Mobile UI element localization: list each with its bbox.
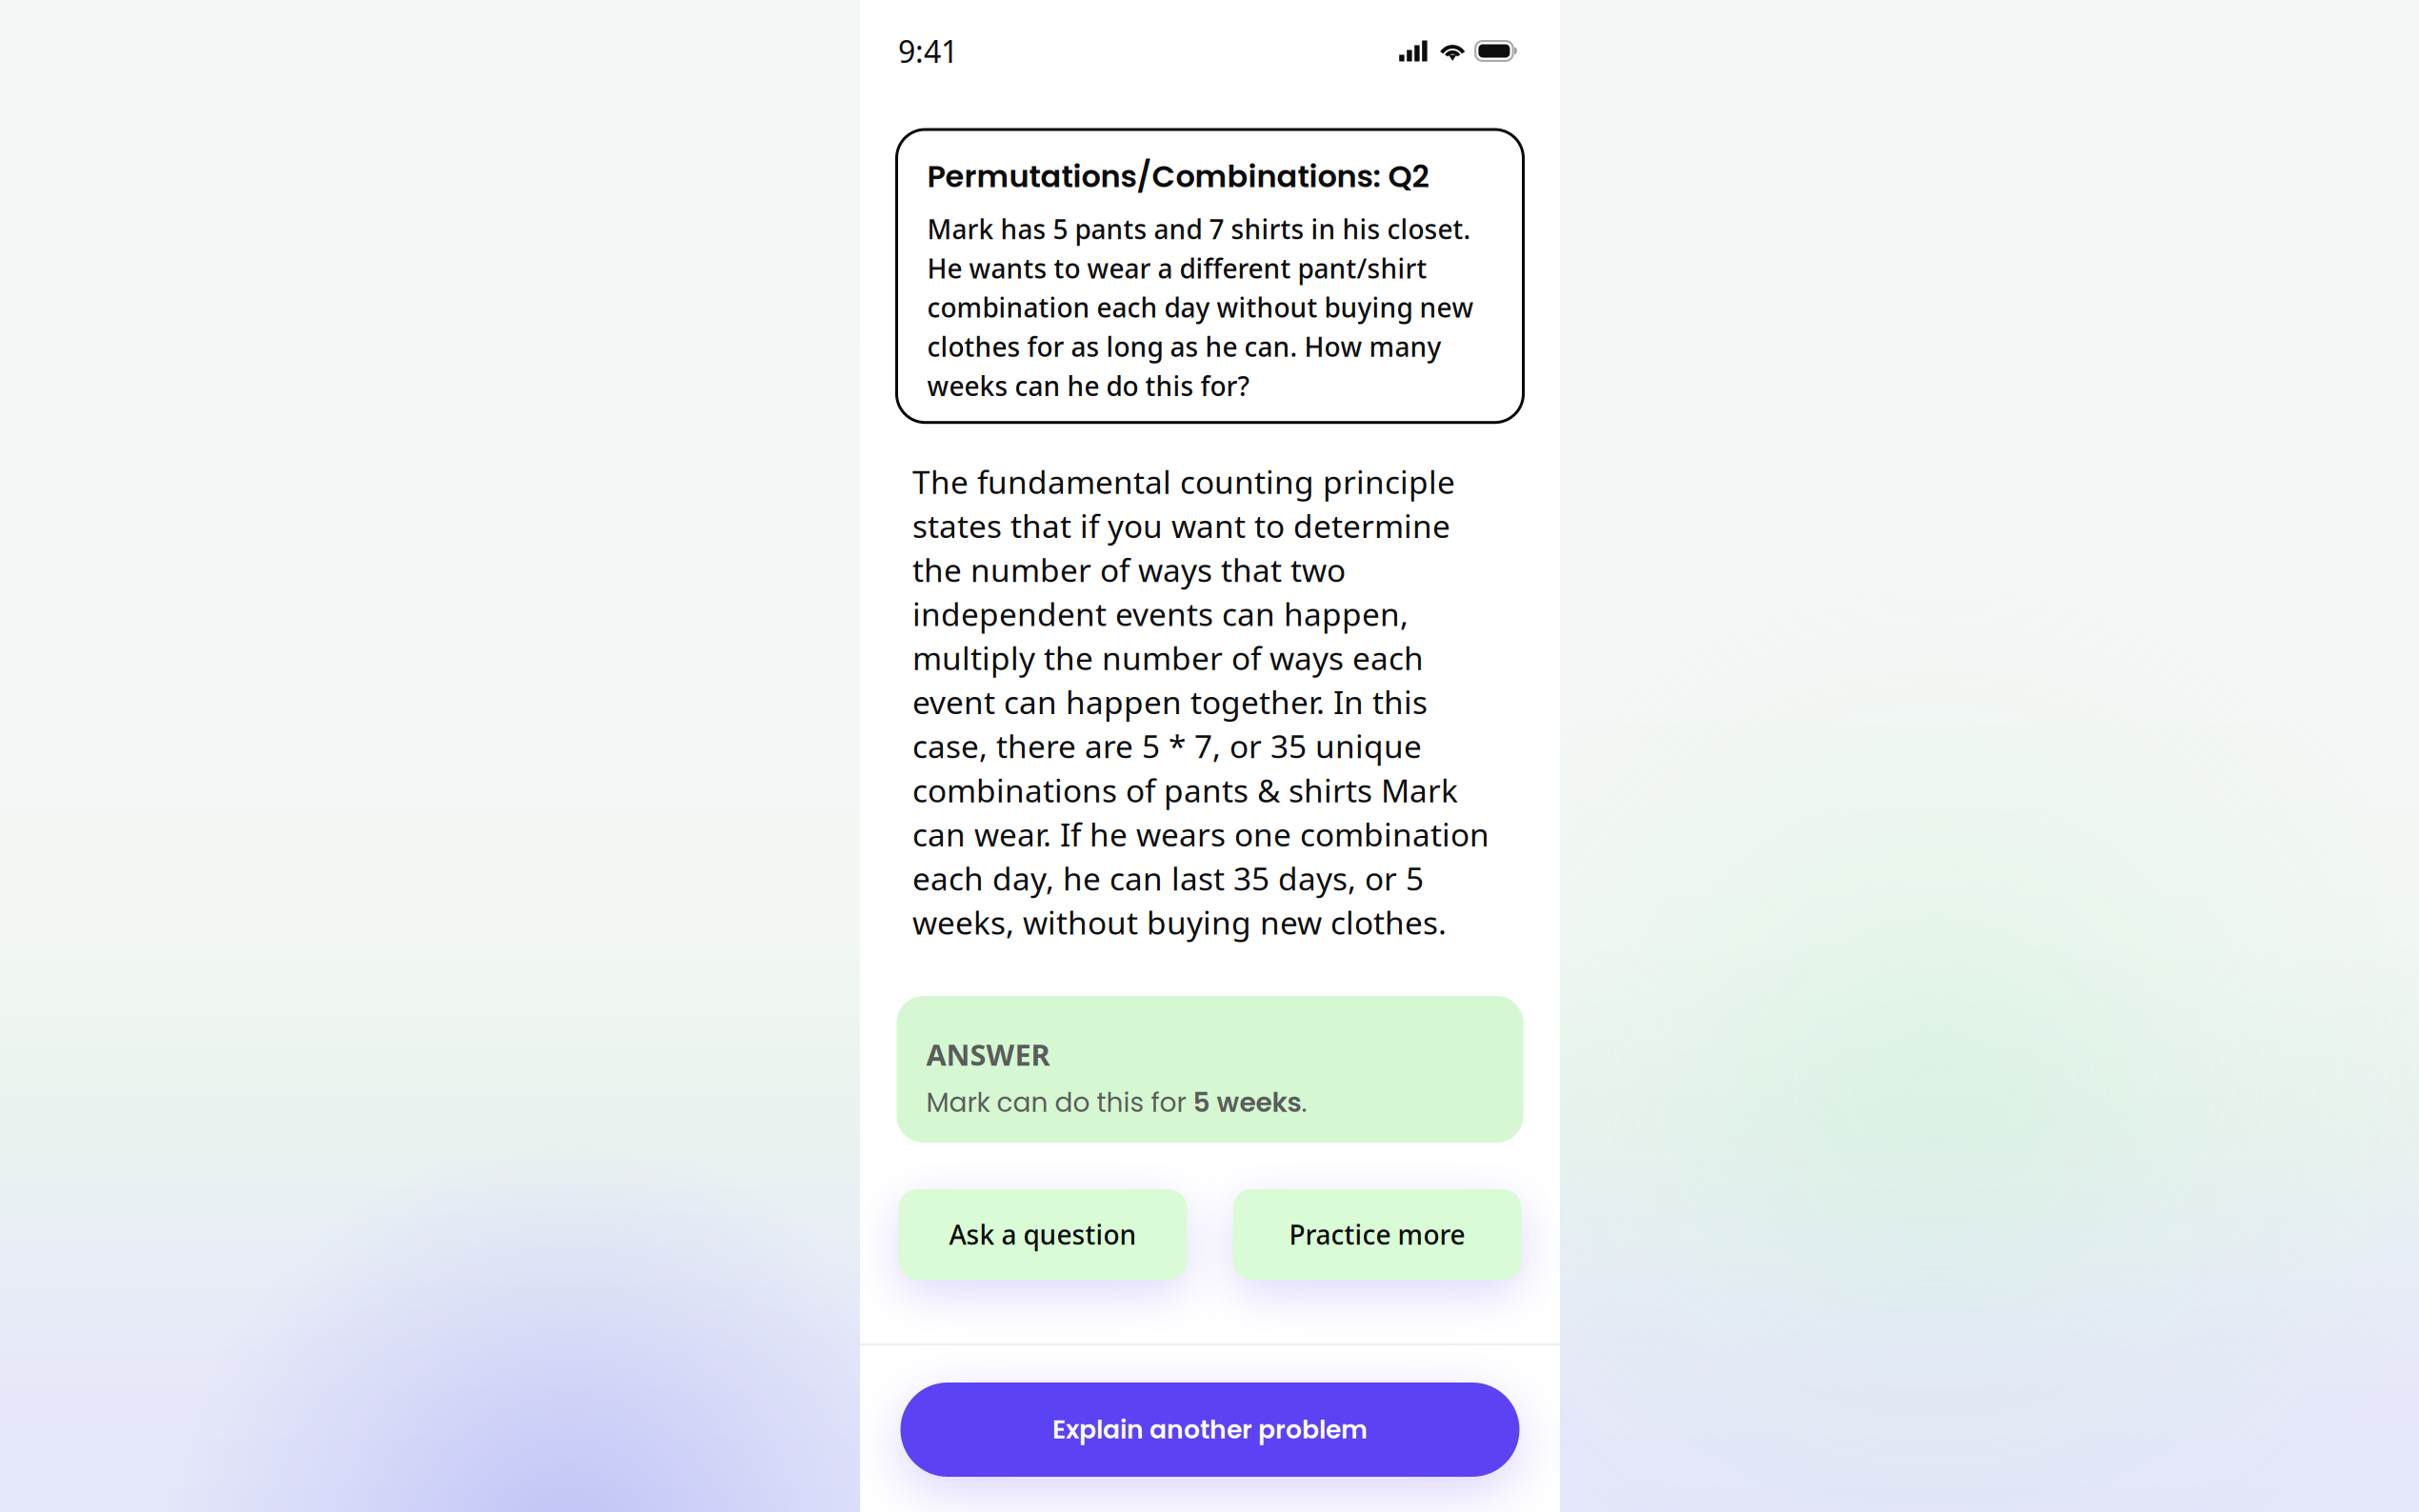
button[interactable]: Explain another problem	[900, 1383, 1519, 1477]
staticText: Mark has 5 pants and 7 shirts in his clo…	[927, 211, 1474, 403]
staticText: Permutations/Combinations: Q2	[927, 155, 1429, 198]
button[interactable]: Ask a question	[899, 1189, 1187, 1280]
staticText: 9:41	[898, 31, 958, 71]
staticText: Ask a question	[949, 1217, 1137, 1252]
staticText: Mark can do this for 5 weeks.	[926, 1084, 1307, 1121]
staticText: The fundamental counting principle state…	[912, 461, 1489, 943]
staticText: Practice more	[1289, 1217, 1465, 1252]
staticText: ANSWER	[926, 1035, 1050, 1074]
staticText: Explain another problem	[1052, 1412, 1368, 1447]
button[interactable]: Practice more	[1233, 1189, 1521, 1280]
